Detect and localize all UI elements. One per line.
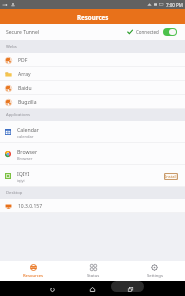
button[interactable]: Array xyxy=(0,67,185,81)
button[interactable]: Install xyxy=(164,173,178,180)
staticText: Secure Tunnel xyxy=(6,29,40,36)
staticText: Bugzilla xyxy=(18,99,37,106)
button[interactable]: Secure tunnel toggle xyxy=(163,28,177,36)
button[interactable]: Secure Tunnel xyxy=(0,24,185,40)
button[interactable]: Home xyxy=(86,283,99,296)
staticText: Resources xyxy=(77,13,109,21)
button[interactable]: Resources xyxy=(3,263,63,280)
staticText: 7:00 PM xyxy=(166,2,183,8)
staticText: Calendar xyxy=(17,126,39,133)
button[interactable]: Browser xyxy=(0,143,185,165)
button[interactable]: Calendar xyxy=(0,121,185,143)
staticText: Array xyxy=(18,71,31,78)
button[interactable]: Back xyxy=(46,283,59,296)
staticText: PDF xyxy=(18,57,28,64)
staticText: Desktop xyxy=(6,190,23,196)
button[interactable]: Recents xyxy=(124,283,137,296)
button[interactable]: Status xyxy=(63,263,124,280)
staticText: Status xyxy=(87,273,100,279)
button[interactable]: IQIYI xyxy=(0,165,185,187)
button[interactable]: Settings xyxy=(124,263,185,280)
staticText: Baidu xyxy=(18,85,32,92)
staticText: Settings xyxy=(147,273,163,279)
staticText: Applications xyxy=(6,112,31,118)
staticText: Browser xyxy=(17,148,38,155)
staticText: IQIYI xyxy=(17,170,30,177)
staticText: calendar xyxy=(17,134,34,139)
button[interactable]: Bugzilla xyxy=(0,95,185,109)
staticText: Browser xyxy=(17,156,33,161)
staticText: Connected xyxy=(136,29,159,35)
button[interactable]: Baidu xyxy=(0,81,185,95)
staticText: iqiyi xyxy=(17,178,25,183)
button[interactable]: PDF xyxy=(0,53,185,67)
staticText: Webs xyxy=(6,44,17,50)
staticText: 10.3.0.157 xyxy=(18,203,43,210)
staticText: Resources xyxy=(23,273,44,279)
button[interactable]: 10.3.0.157 xyxy=(0,199,185,213)
staticText: Install xyxy=(165,174,177,179)
